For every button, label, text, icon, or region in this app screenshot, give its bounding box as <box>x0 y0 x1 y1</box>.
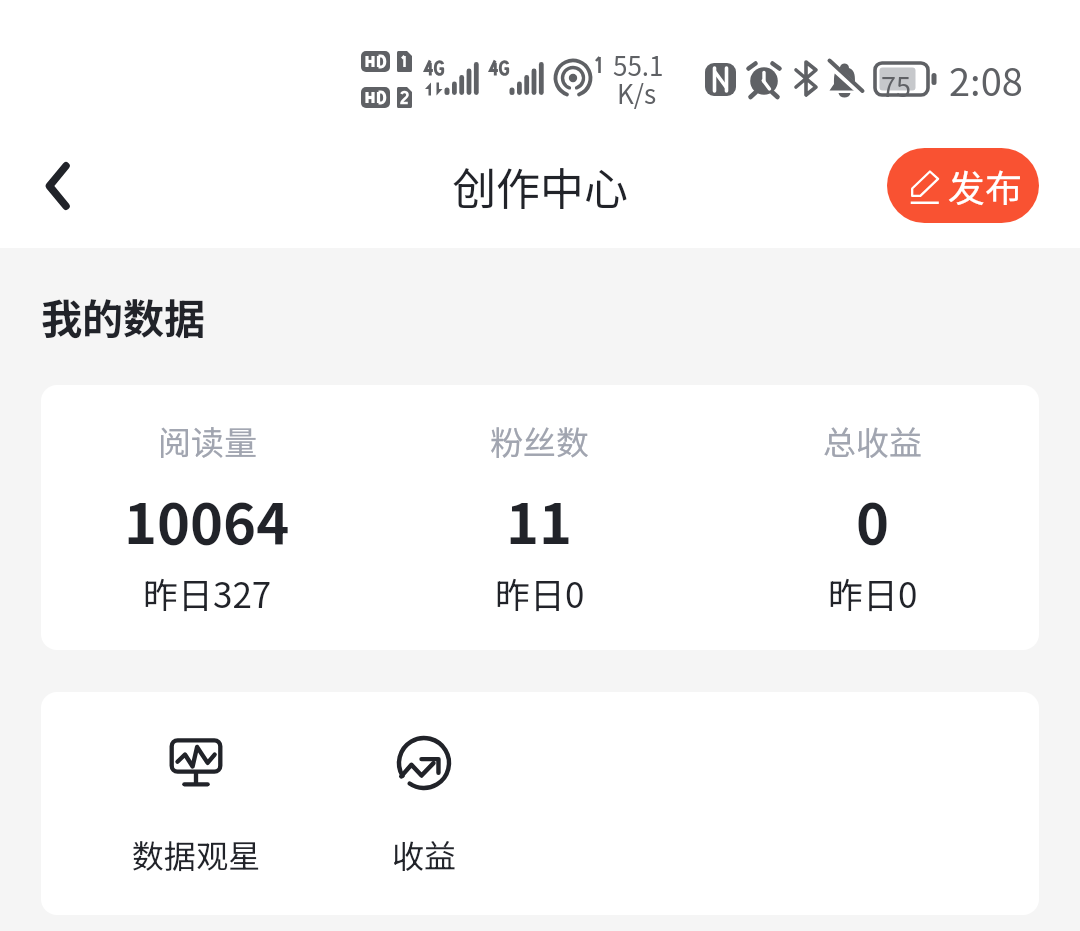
button[interactable]: 总收益 <box>706 385 1039 650</box>
staticText: 昨日0 <box>495 567 585 618</box>
staticText: 昨日0 <box>828 567 918 618</box>
staticText: 阅读量 <box>158 417 257 465</box>
staticText: 收益 <box>392 831 457 877</box>
button[interactable]: 阅读量 <box>41 385 373 650</box>
staticText: 75 <box>881 66 911 105</box>
staticText: 粉丝数 <box>490 417 589 465</box>
button[interactable]: 粉丝数 <box>373 385 706 650</box>
staticText: 我的数据 <box>41 286 205 345</box>
staticText: 总收益 <box>823 417 922 465</box>
staticText: 发布 <box>948 159 1022 213</box>
staticText: 11 <box>506 479 573 560</box>
staticText: 55.1 <box>613 46 664 84</box>
staticText: 10064 <box>124 479 290 560</box>
staticText: K/s <box>617 74 657 112</box>
button[interactable]: 数据观星 <box>82 692 310 915</box>
staticText: 数据观星 <box>132 831 261 877</box>
staticText: 2:08 <box>949 52 1023 107</box>
button[interactable]: 收益 <box>310 692 538 915</box>
staticText: 昨日327 <box>143 567 272 618</box>
button[interactable]: 发布 <box>887 148 1039 223</box>
staticText: 创作中心 <box>452 154 628 218</box>
button[interactable]: Back <box>18 149 92 223</box>
staticText: 0 <box>856 479 890 560</box>
